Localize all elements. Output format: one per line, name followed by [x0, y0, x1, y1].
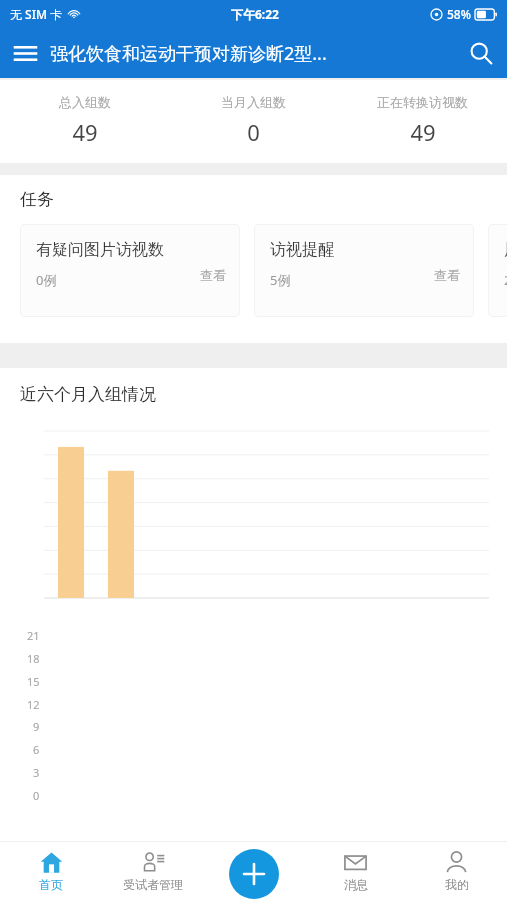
staticText: 58% — [447, 6, 471, 22]
staticText: 历史访视 — [504, 240, 507, 260]
button[interactable]: 历史访视 — [488, 224, 507, 317]
staticText: 首页 — [39, 877, 63, 892]
staticText: 近六个月入组情况 — [20, 384, 156, 405]
staticText: 总入组数 — [59, 94, 111, 110]
staticText: 强化饮食和运动干预对新诊断2型... — [50, 41, 455, 66]
staticText: 我的 — [445, 877, 469, 892]
staticText: 正在转换访视数 — [377, 94, 468, 110]
staticText: 3 — [33, 765, 40, 780]
staticText: 15 — [27, 674, 40, 689]
staticText: 当月入组数 — [221, 94, 286, 110]
staticText: 下午6:22 — [231, 6, 279, 22]
staticText: 受试者管理 — [123, 877, 183, 892]
button[interactable]: 消息 — [305, 842, 406, 900]
button[interactable]: Search — [455, 28, 507, 78]
button[interactable]: 有疑问图片访视数 — [20, 224, 240, 317]
button[interactable]: 访视提醒 — [254, 224, 474, 317]
button[interactable]: 受试者管理 — [102, 842, 204, 900]
button[interactable]: 总入组数 — [0, 94, 169, 147]
staticText: 访视提醒 — [270, 240, 334, 260]
staticText: 49 — [410, 117, 436, 147]
staticText: 49 — [72, 117, 98, 147]
staticText: 有疑问图片访视数 — [36, 240, 164, 260]
button[interactable]: 查看 — [434, 267, 460, 283]
button[interactable]: 我的 — [406, 842, 507, 900]
button[interactable]: 当月入组数 — [169, 94, 338, 147]
button[interactable]: 正在转换访视数 — [338, 94, 507, 147]
staticText: 0 — [33, 788, 40, 803]
staticText: 0 — [247, 117, 260, 147]
button[interactable]: Menu — [0, 28, 50, 78]
button[interactable]: 首页 — [0, 842, 102, 900]
staticText: 消息 — [344, 877, 368, 892]
staticText: 18 — [27, 651, 40, 666]
staticText: 任务 — [20, 189, 54, 210]
staticText: 0例 — [36, 271, 57, 289]
staticText: 2例 — [504, 271, 507, 289]
staticText: 无 SIM 卡 — [10, 6, 63, 22]
staticText: 6 — [33, 742, 40, 757]
staticText: 21 — [27, 628, 40, 643]
staticText: 新手入门 — [20, 868, 88, 889]
staticText: 9 — [33, 719, 40, 734]
staticText: 5例 — [270, 271, 291, 289]
button[interactable]: 查看 — [200, 267, 226, 283]
button[interactable]: Add — [229, 849, 279, 899]
staticText: 12 — [27, 697, 40, 712]
